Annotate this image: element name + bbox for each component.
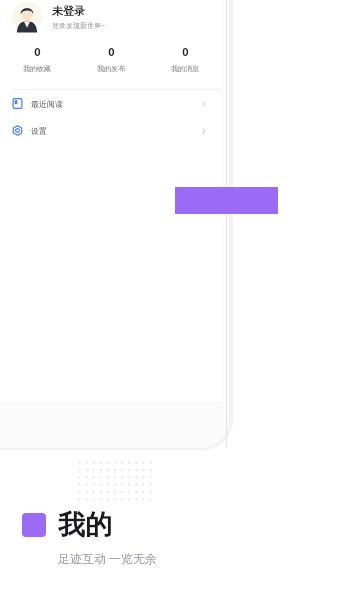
button[interactable]: 0 <box>74 42 148 75</box>
button[interactable]: 设置 <box>0 117 222 144</box>
staticText: 设置 <box>31 126 47 136</box>
staticText: 未登录 <box>52 4 85 18</box>
staticText: 最近阅读 <box>31 99 63 109</box>
staticText: 0 <box>182 44 189 59</box>
staticText: 我的消息 <box>171 64 199 73</box>
staticText: 我的 <box>58 508 112 542</box>
staticText: 0 <box>108 44 115 59</box>
staticText: 我的收藏 <box>23 64 51 73</box>
button[interactable]: 0 <box>148 42 222 75</box>
button[interactable]: 未登录 <box>12 2 210 32</box>
button[interactable]: 最近阅读 <box>0 90 222 117</box>
staticText: 我的发布 <box>97 64 125 73</box>
button[interactable]: 0 <box>0 42 74 75</box>
staticText: 登录发现新世界~ <box>52 21 106 31</box>
staticText: 足迹互动 一览无余 <box>58 550 158 566</box>
staticText: 0 <box>34 44 41 59</box>
